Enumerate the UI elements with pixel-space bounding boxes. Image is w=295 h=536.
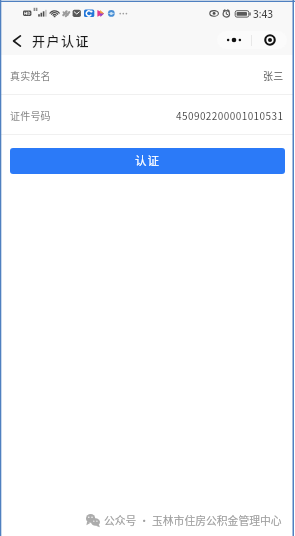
button[interactable]: 真实姓名 — [0, 55, 295, 94]
staticText: 开户认证 — [32, 31, 91, 50]
button[interactable]: 公众号 · 玉林市住房公积金管理中心 — [86, 512, 282, 528]
button[interactable]: More options — [217, 31, 251, 49]
button[interactable]: 证件号码 — [0, 95, 295, 134]
staticText: 450902200001010531 — [176, 108, 284, 122]
staticText: 真实姓名 — [10, 68, 51, 82]
button[interactable]: 认证 — [10, 148, 285, 174]
staticText: 证件号码 — [10, 108, 51, 122]
staticText: 公众号 · 玉林市住房公积金管理中心 — [104, 512, 282, 528]
button[interactable]: Back — [3, 27, 31, 55]
staticText: 3:43 — [253, 7, 273, 21]
staticText: 张三 — [263, 68, 284, 82]
button[interactable]: Close mini program — [252, 31, 287, 49]
staticText: 认证 — [135, 152, 160, 169]
